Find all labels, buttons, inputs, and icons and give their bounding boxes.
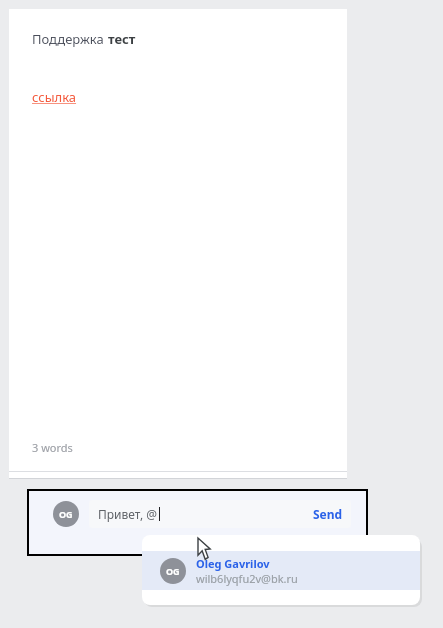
button[interactable]: OG	[142, 551, 420, 590]
staticText: OG	[59, 508, 73, 520]
staticText: wilb6lyqfu2v@bk.ru	[196, 571, 298, 586]
staticText: ссылка	[32, 88, 77, 106]
staticText: Oleg Gavrilov	[196, 556, 270, 571]
staticText: 3 words	[32, 440, 73, 455]
button[interactable]: OG	[27, 489, 368, 556]
button[interactable]: ссылка	[32, 88, 77, 106]
staticText: Привет, @	[98, 506, 158, 522]
staticText: OG	[166, 565, 180, 577]
staticText: тест	[108, 30, 136, 48]
other: Pointer	[198, 538, 214, 560]
button[interactable]: Send	[313, 506, 343, 522]
button[interactable]: Привет, @	[89, 500, 351, 528]
staticText: Поддержка	[32, 30, 108, 48]
